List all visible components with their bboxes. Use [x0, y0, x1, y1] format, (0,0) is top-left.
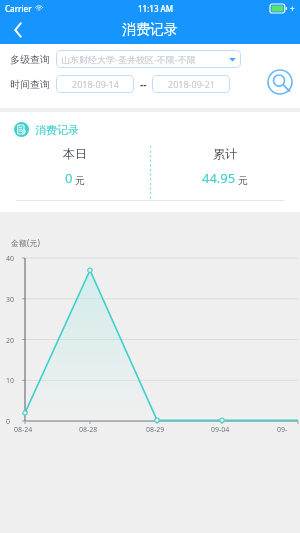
staticText: 09-04: [211, 425, 230, 435]
staticText: 2018-09-14: [72, 78, 119, 90]
staticText: 40: [6, 254, 15, 264]
staticText: 0: [65, 169, 73, 187]
staticText: 山东财经大学-圣井校区-不限-不限: [61, 53, 196, 65]
staticText: 44.95: [202, 169, 236, 187]
button[interactable]: 2018-09-21: [152, 75, 230, 93]
staticText: 消费记录: [35, 123, 79, 137]
staticText: 08-29: [146, 425, 165, 435]
staticText: 累计: [213, 146, 237, 161]
staticText: --: [140, 77, 147, 91]
staticText: 2018-09-21: [168, 78, 215, 90]
staticText: 0: [6, 417, 11, 427]
staticText: 08-24: [14, 425, 33, 435]
staticText: 元: [238, 174, 248, 187]
staticText: 多级查询: [10, 53, 50, 66]
staticText: 30: [6, 295, 15, 305]
staticText: 消费记录: [122, 21, 178, 39]
staticText: 本日: [63, 146, 87, 161]
staticText: 09-: [277, 425, 288, 435]
staticText: 元: [75, 174, 85, 187]
staticText: Carrier: [5, 3, 32, 14]
staticText: 11:13 AM: [138, 3, 174, 14]
button[interactable]: Search: [267, 69, 293, 95]
staticText: +: [290, 3, 295, 14]
button[interactable]: 2018-09-14: [56, 75, 134, 93]
staticText: 20: [6, 336, 15, 346]
button[interactable]: 山东财经大学-圣井校区-不限-不限: [56, 50, 241, 68]
staticText: 08-28: [79, 425, 98, 435]
button[interactable]: Back: [4, 16, 32, 44]
staticText: 金额(元): [11, 237, 40, 248]
staticText: 10: [6, 376, 15, 386]
staticText: 时间查询: [10, 78, 50, 91]
